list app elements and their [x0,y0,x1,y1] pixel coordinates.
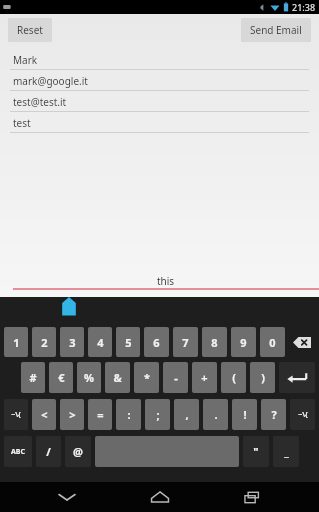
staticText: , [185,407,189,422]
button[interactable]: test@test.it [10,93,309,114]
button[interactable]: ~\{ [4,399,28,430]
staticText: ~\{ [11,410,21,420]
button[interactable]: 5 [116,327,140,357]
staticText: @ [73,444,83,459]
staticText: 5 [125,335,132,350]
staticText: Send Email [250,23,302,37]
staticText: ~\{ [298,410,308,420]
button[interactable]: . [203,399,228,430]
staticText: 1 [13,335,20,350]
staticText: 9 [240,335,247,350]
button[interactable]: 3 [60,327,84,357]
button[interactable]: Delete [289,327,315,357]
button[interactable]: 0 [260,327,285,357]
button[interactable]: " [243,436,269,467]
button[interactable]: 8 [202,327,227,357]
staticText: ! [243,407,247,422]
staticText: 8 [211,335,218,350]
button[interactable]: ( [221,362,246,393]
staticText: 6 [153,335,160,350]
button[interactable]: Mark [10,51,309,72]
button[interactable]: % [77,362,101,393]
button[interactable]: 4 [88,327,112,357]
staticText: test@test.it [13,95,67,109]
button[interactable]: : [116,399,141,430]
button[interactable]: - [163,362,188,393]
staticText: _ [284,444,289,459]
staticText: 7 [182,335,189,350]
button[interactable]: Home [135,482,185,512]
button[interactable]: 6 [144,327,169,357]
staticText: % [84,370,94,385]
button[interactable]: @ [65,436,91,467]
button[interactable]: Recent apps [227,482,277,512]
button[interactable]: Hide keyboard [42,482,92,512]
staticText: < [41,407,48,422]
staticText: Mark [13,53,38,67]
button[interactable]: 1 [4,327,28,357]
staticText: 3 [69,335,76,350]
staticText: 4 [97,335,104,350]
staticText: & [113,370,122,385]
staticText: - [174,370,178,385]
button[interactable]: ? [261,399,286,430]
staticText: # [29,370,37,385]
staticText: mark@google.it [13,74,88,88]
button[interactable]: Enter [279,362,315,393]
staticText: : [127,407,131,422]
staticText: 21:38 [292,1,316,13]
button[interactable]: mark@google.it [10,72,309,93]
staticText: > [69,407,76,422]
button[interactable]: < [32,399,56,430]
staticText: this [157,274,175,288]
button[interactable]: € [49,362,73,393]
button[interactable]: 7 [173,327,198,357]
button[interactable]: 2 [32,327,56,357]
staticText: " [253,444,259,459]
button[interactable]: ; [145,399,170,430]
staticText: ABC [11,447,25,457]
staticText: ( [232,370,236,385]
staticText: € [58,370,65,385]
button[interactable]: ABC [4,436,32,467]
button[interactable]: , [174,399,199,430]
button[interactable]: # [21,362,45,393]
staticText: 0 [269,335,276,350]
staticText: ? [271,407,277,422]
button[interactable]: _ [273,436,299,467]
button[interactable]: ! [232,399,257,430]
button[interactable]: + [192,362,217,393]
button[interactable]: * [134,362,159,393]
staticText: * [144,370,150,385]
staticText: = [97,407,104,422]
button[interactable]: > [60,399,84,430]
staticText: . [214,407,218,422]
button[interactable]: Send Email [241,18,311,42]
staticText: 2 [41,335,48,350]
button[interactable]: ~\{ [290,399,315,430]
button[interactable]: & [105,362,130,393]
staticText: test [13,116,31,130]
button[interactable]: Reset [8,18,52,42]
button[interactable]: 9 [231,327,256,357]
staticText: / [46,444,51,459]
button[interactable]: test [10,114,309,135]
staticText: + [201,370,208,385]
button[interactable]: = [88,399,112,430]
staticText: ) [261,370,265,385]
staticText: ; [156,407,160,422]
button[interactable]: / [36,436,61,467]
staticText: Reset [17,23,43,37]
button[interactable]: ) [250,362,275,393]
